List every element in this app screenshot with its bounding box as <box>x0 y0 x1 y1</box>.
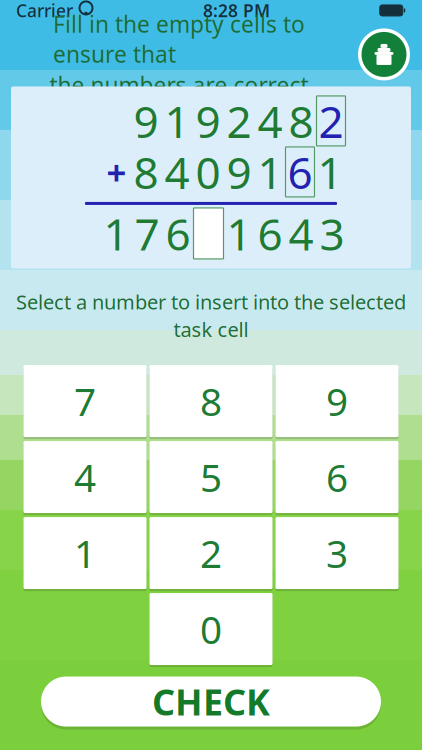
staticText: the numbers are correct <box>49 70 308 100</box>
staticText: CHECK <box>152 678 270 725</box>
button[interactable]: 3 <box>275 517 398 590</box>
staticText: 1 <box>226 204 251 263</box>
staticText: 9 <box>133 92 158 150</box>
staticText: 6 <box>287 143 312 201</box>
button[interactable]: Empty answer cell <box>193 208 223 259</box>
button[interactable]: 2 <box>149 517 272 590</box>
staticText: 8 <box>288 92 313 150</box>
staticText: 1 <box>257 143 282 201</box>
staticText: 4 <box>288 204 313 263</box>
staticText: 8:28 PM <box>203 0 270 22</box>
staticText: Carrier <box>16 0 73 22</box>
staticText: 1 <box>103 204 128 263</box>
staticText: 2 <box>226 92 251 150</box>
staticText: 4 <box>164 143 189 201</box>
staticText: + <box>106 149 126 195</box>
staticText: 7 <box>134 204 159 263</box>
button[interactable]: 8 <box>149 365 272 438</box>
staticText: 9 <box>226 143 251 201</box>
staticText: 9 <box>195 92 220 150</box>
staticText: Fill in the empty cells to ensure that <box>53 9 305 69</box>
staticText: 8 <box>133 143 158 201</box>
staticText: 6 <box>257 204 282 263</box>
button[interactable]: 1 <box>23 517 146 590</box>
staticText: 2 <box>318 92 343 150</box>
staticText: 4 <box>257 92 282 150</box>
staticText: 4 <box>74 451 96 503</box>
staticText: 1 <box>164 92 189 150</box>
staticText: 0 <box>200 603 222 655</box>
staticText: 7 <box>74 375 96 427</box>
button[interactable]: 9 <box>275 365 398 438</box>
staticText: task cell <box>173 316 248 343</box>
staticText: Select a number to insert into the selec… <box>16 288 406 315</box>
staticText: 1 <box>317 143 342 201</box>
button[interactable]: 6 <box>275 441 398 514</box>
button[interactable]: 7 <box>23 365 146 438</box>
button[interactable]: 0 <box>149 593 272 666</box>
staticText: 2 <box>200 527 222 579</box>
staticText: 1 <box>74 527 96 579</box>
staticText: 8 <box>200 375 222 427</box>
staticText: 0 <box>195 143 220 201</box>
button[interactable]: 5 <box>149 441 272 514</box>
staticText: 3 <box>319 204 344 263</box>
staticText: 6 <box>326 451 348 503</box>
staticText: 3 <box>326 527 348 579</box>
button[interactable]: 4 <box>23 441 146 514</box>
button[interactable]: Home <box>357 27 411 81</box>
button[interactable]: CHECK <box>41 674 381 730</box>
staticText: 5 <box>200 451 222 503</box>
staticText: 9 <box>326 375 348 427</box>
staticText: 6 <box>165 204 190 263</box>
